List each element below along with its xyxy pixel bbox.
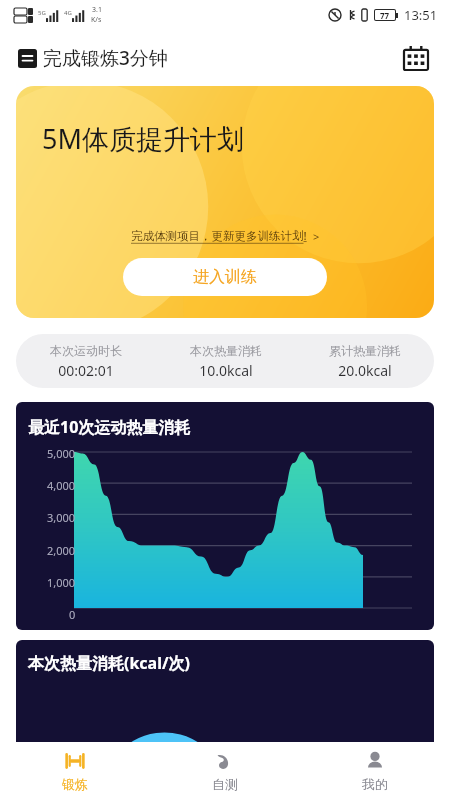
staticText: 5G: [38, 9, 46, 17]
staticText: 4G: [64, 9, 72, 17]
button[interactable]: 最近10次运动热量消耗: [16, 402, 434, 630]
staticText: 锻炼: [62, 776, 88, 792]
button[interactable]: Menu: [18, 45, 168, 71]
staticText: 3,000: [47, 510, 76, 525]
staticText: 完成锻炼3分钟: [43, 45, 168, 71]
staticText: 1,000: [47, 575, 76, 590]
staticText: 3.1: [92, 5, 102, 15]
staticText: 20.0kcal: [338, 361, 392, 380]
staticText: 最近10次运动热量消耗: [28, 416, 191, 438]
staticText: 进入训练: [193, 267, 257, 287]
staticText: 13:51: [404, 6, 438, 24]
staticText: 我的: [362, 776, 388, 792]
button[interactable]: 进入训练: [123, 258, 327, 296]
button[interactable]: 本次运动时长: [16, 334, 434, 388]
staticText: 0: [69, 607, 76, 622]
button[interactable]: 5M体质提升计划: [16, 86, 434, 318]
button[interactable]: 锻炼: [0, 742, 150, 800]
staticText: 5M体质提升计划: [42, 120, 244, 157]
staticText: 本次热量消耗(kcal/次): [28, 652, 191, 674]
staticText: 自测: [212, 776, 238, 792]
button[interactable]: Calendar: [396, 38, 436, 78]
button[interactable]: 完成体测项目，更新更多训练计划!: [16, 228, 434, 244]
button[interactable]: 自测: [150, 742, 300, 800]
staticText: K/s: [91, 15, 102, 25]
staticText: 力量 1min: [322, 740, 378, 756]
other: Menu: [18, 49, 37, 68]
staticText: 77: [380, 10, 390, 20]
button[interactable]: 本次热量消耗(kcal/次): [16, 640, 434, 760]
staticText: 2,000: [47, 543, 76, 558]
staticText: 本次热量消耗: [190, 343, 262, 358]
staticText: 4,000: [47, 478, 76, 493]
staticText: 5,000: [47, 446, 76, 461]
button[interactable]: 我的: [300, 742, 450, 800]
staticText: 累计热量消耗: [329, 343, 401, 358]
staticText: 完成体测项目，更新更多训练计划!: [131, 228, 307, 244]
staticText: >: [313, 229, 320, 244]
staticText: 00:02:01: [58, 361, 114, 380]
staticText: 10.0kcal: [199, 361, 253, 380]
staticText: 本次运动时长: [50, 343, 122, 358]
